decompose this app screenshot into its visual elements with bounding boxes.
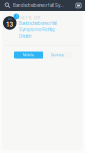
staticText: 1 [16, 14, 17, 18]
staticText: Desktop [51, 53, 64, 57]
staticText: 13 [6, 21, 13, 28]
button[interactable]: Mobile [14, 51, 43, 58]
staticText: JUL [8, 18, 12, 21]
staticText: Deuten [19, 34, 31, 39]
staticText: Mobile [23, 53, 34, 57]
staticText: Bandscheibenvorfall Sy… [13, 3, 64, 8]
staticText: Symptome Richtig [19, 27, 55, 32]
button[interactable]: Show tabs [72, 0, 85, 11]
button[interactable]: Bandscheibenvorfall [19, 21, 61, 39]
button[interactable]: Desktop [43, 51, 72, 58]
staticText: JULY 13, 2017 [19, 16, 40, 20]
staticText: Bandscheibenvorfall [19, 21, 57, 26]
button[interactable]: Search [0, 0, 13, 11]
